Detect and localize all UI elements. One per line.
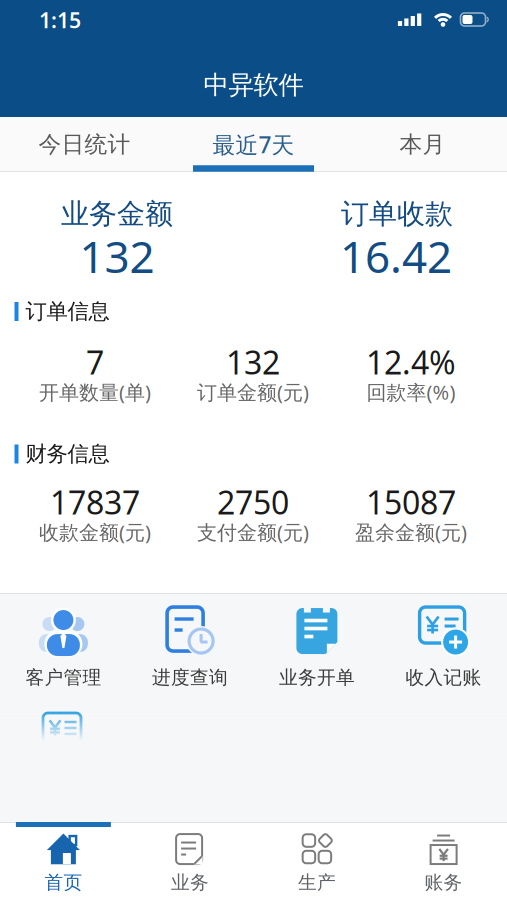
button[interactable]: 业务	[127, 827, 253, 899]
staticText: 进度查询	[152, 666, 228, 689]
button[interactable]: 客户管理	[3, 598, 123, 694]
button[interactable]: 账务	[381, 827, 507, 899]
button[interactable]: 生产	[254, 827, 380, 899]
staticText: 12.4%	[366, 341, 456, 383]
staticText: 订单信息	[25, 298, 109, 325]
staticText: 中异软件	[203, 69, 303, 100]
staticText: 支付金额(元)	[197, 519, 309, 545]
staticText: 客户管理	[25, 666, 101, 689]
staticText: 盈余金额(元)	[355, 519, 467, 545]
button[interactable]: 首页	[0, 827, 126, 899]
staticText: 首页	[44, 871, 82, 894]
staticText: 收款金额(元)	[39, 519, 151, 545]
staticText: 15087	[366, 481, 456, 523]
button[interactable]: 最近7天	[169, 117, 338, 172]
staticText: 开单数量(单)	[39, 379, 151, 405]
button[interactable]: 业务开单	[257, 598, 377, 694]
staticText: 收入记账	[406, 666, 482, 689]
staticText: 订单金额(元)	[197, 379, 309, 405]
staticText: 1:15	[39, 6, 81, 34]
staticText: 财务信息	[25, 441, 109, 467]
staticText: 业务	[171, 871, 209, 894]
staticText: 2750	[217, 481, 289, 523]
staticText: 132	[226, 341, 280, 383]
staticText: 本月	[399, 131, 445, 158]
button[interactable]: 进度查询	[130, 598, 250, 694]
staticText: 生产	[298, 871, 336, 894]
staticText: 今日统计	[38, 131, 130, 158]
staticText: 业务开单	[279, 666, 355, 689]
staticText: 业务金额	[61, 197, 173, 231]
staticText: 17837	[50, 481, 140, 523]
button[interactable]: 今日统计	[0, 117, 169, 172]
button[interactable]: 支出记账	[42, 711, 86, 751]
staticText: 132	[79, 227, 154, 285]
staticText: 回款率(%)	[366, 379, 455, 405]
staticText: 账务	[425, 871, 463, 894]
button[interactable]: 收入记账	[384, 598, 504, 694]
staticText: 订单收款	[341, 197, 453, 231]
staticText: 16.42	[340, 227, 452, 285]
staticText: 最近7天	[212, 129, 294, 159]
staticText: 7	[86, 341, 104, 383]
button[interactable]: 本月	[338, 117, 507, 172]
